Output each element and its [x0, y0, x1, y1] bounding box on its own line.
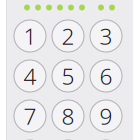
button[interactable]: 5	[52, 60, 84, 92]
staticText: 3	[99, 21, 112, 51]
button[interactable]: 4	[14, 60, 46, 92]
button[interactable]: 6	[90, 60, 122, 92]
staticText: 1	[23, 21, 36, 51]
button[interactable]: 7	[14, 100, 46, 132]
staticText: 7	[23, 101, 36, 131]
button[interactable]: 9	[90, 100, 122, 132]
staticText: 2	[61, 21, 74, 51]
staticText: 5	[61, 61, 74, 91]
staticText: 6	[99, 61, 112, 91]
button[interactable]: 1	[14, 20, 46, 52]
button[interactable]: 2	[52, 20, 84, 52]
staticText: 4	[23, 61, 36, 91]
staticText: 8	[61, 101, 74, 131]
staticText: 9	[99, 101, 112, 131]
button[interactable]: 8	[52, 100, 84, 132]
button[interactable]: 3	[90, 20, 122, 52]
